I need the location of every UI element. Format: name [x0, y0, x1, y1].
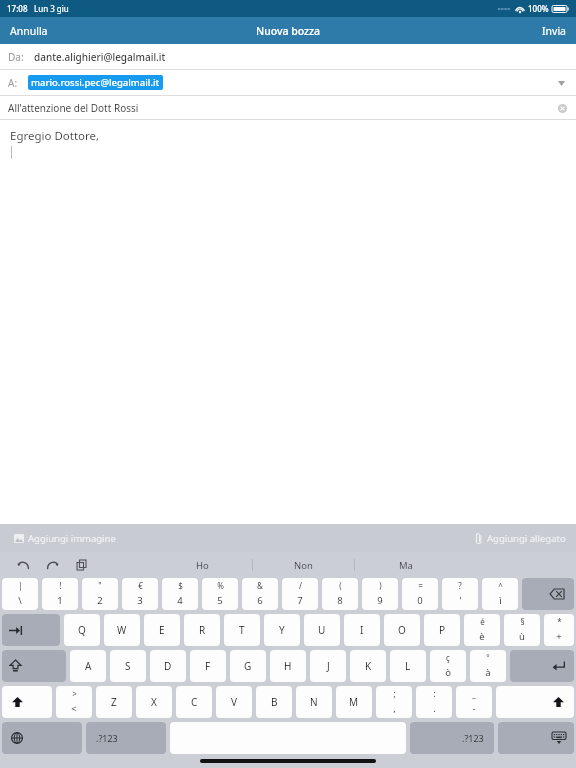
button[interactable]: $	[162, 578, 198, 610]
button[interactable]: F	[190, 650, 226, 682]
button[interactable]: |	[2, 578, 38, 610]
button[interactable]: Aggiungi immagine	[0, 524, 130, 552]
button[interactable]: Cambia lingua	[2, 722, 82, 754]
button[interactable]: Y	[264, 614, 300, 646]
button[interactable]: é	[464, 614, 500, 646]
button[interactable]: ;	[376, 686, 412, 718]
button[interactable]: R	[184, 614, 220, 646]
button[interactable]: P	[424, 614, 460, 646]
button[interactable]: A:	[0, 70, 576, 95]
button[interactable]: I	[344, 614, 380, 646]
button[interactable]: /	[282, 578, 318, 610]
button[interactable]: Maiuscolo destra	[496, 686, 574, 718]
staticText: _	[472, 688, 476, 699]
button[interactable]: €	[122, 578, 158, 610]
button[interactable]: Tab	[2, 614, 60, 646]
button[interactable]: C	[176, 686, 212, 718]
button[interactable]: =	[402, 578, 438, 610]
staticText: V	[231, 695, 237, 709]
button[interactable]: &	[242, 578, 278, 610]
staticText: Aggiungi immagine	[28, 532, 116, 545]
staticText: mario.rossi.pec@legalmail.it	[31, 76, 160, 89]
staticText: K	[365, 659, 372, 673]
button[interactable]: B	[256, 686, 292, 718]
button[interactable]: K	[350, 650, 386, 682]
button[interactable]: Ripristina	[42, 554, 64, 576]
button[interactable]: Cancella oggetto	[554, 100, 570, 116]
button[interactable]: Z	[96, 686, 132, 718]
button[interactable]: *	[544, 614, 574, 646]
button[interactable]: Non	[253, 552, 354, 578]
button[interactable]: S	[110, 650, 146, 682]
button[interactable]: Invio	[510, 650, 574, 682]
button[interactable]: All'attenzione del Dott Rossi	[0, 96, 576, 119]
button[interactable]: O	[384, 614, 420, 646]
button[interactable]: Q	[64, 614, 100, 646]
button[interactable]: T	[224, 614, 260, 646]
button[interactable]: V	[216, 686, 252, 718]
button[interactable]: (	[322, 578, 358, 610]
staticText: Ho	[196, 559, 209, 572]
staticText: P	[439, 623, 446, 637]
button[interactable]: Da:	[0, 44, 576, 69]
button[interactable]: "	[82, 578, 118, 610]
staticText: F	[205, 659, 211, 673]
button[interactable]: Ho	[152, 552, 252, 578]
button[interactable]: H	[270, 650, 306, 682]
button[interactable]: D	[150, 650, 186, 682]
button[interactable]: .?123	[410, 722, 494, 754]
button[interactable]: !	[42, 578, 78, 610]
button[interactable]: :	[416, 686, 452, 718]
staticText: Da:	[8, 50, 24, 64]
staticText: ì	[499, 594, 502, 607]
staticText: T	[239, 623, 245, 637]
button[interactable]: Maiuscole	[2, 650, 66, 682]
button[interactable]: Aggiungi allegato	[465, 524, 576, 552]
button[interactable]: X	[136, 686, 172, 718]
staticText: =	[418, 580, 423, 591]
staticText: 8	[337, 594, 343, 607]
button[interactable]: .?123	[86, 722, 166, 754]
button[interactable]: Mostra destinatari	[552, 74, 570, 92]
button[interactable]: E	[144, 614, 180, 646]
button[interactable]: A	[70, 650, 106, 682]
button[interactable]: J	[310, 650, 346, 682]
staticText: O	[398, 623, 406, 637]
staticText: 1	[57, 594, 63, 607]
button[interactable]: Nascondi tastiera	[498, 722, 574, 754]
button[interactable]: °	[470, 650, 506, 682]
button[interactable]: Incolla	[70, 554, 92, 576]
staticText: 5	[217, 594, 223, 607]
button[interactable]: %	[202, 578, 238, 610]
staticText: €	[138, 580, 143, 591]
button[interactable]: G	[230, 650, 266, 682]
button[interactable]: §	[504, 614, 540, 646]
button[interactable]: Annulla	[12, 554, 34, 576]
staticText: Non	[294, 559, 313, 572]
button[interactable]: ?	[442, 578, 478, 610]
button[interactable]: Ma	[355, 552, 456, 578]
button[interactable]: Annulla	[0, 17, 58, 44]
button[interactable]: Cancella	[522, 578, 574, 610]
button[interactable]: W	[104, 614, 140, 646]
button[interactable]: ^	[482, 578, 518, 610]
button[interactable]: _	[456, 686, 492, 718]
button[interactable]: Maiuscolo sinistra	[2, 686, 52, 718]
staticText: ç	[446, 652, 450, 663]
staticText: é	[480, 616, 485, 627]
button[interactable]: )	[362, 578, 398, 610]
button[interactable]: U	[304, 614, 340, 646]
staticText: 9	[377, 594, 383, 607]
button[interactable]: ç	[430, 650, 466, 682]
staticText: !	[59, 580, 62, 591]
button[interactable]: Invia	[532, 17, 576, 44]
staticText: 3	[137, 594, 143, 607]
staticText: 6	[257, 594, 263, 607]
button[interactable]: N	[296, 686, 332, 718]
staticText: C	[191, 695, 198, 709]
button[interactable]: L	[390, 650, 426, 682]
button[interactable]: M	[336, 686, 372, 718]
staticText: ù	[519, 630, 525, 643]
button[interactable]: >	[56, 686, 92, 718]
